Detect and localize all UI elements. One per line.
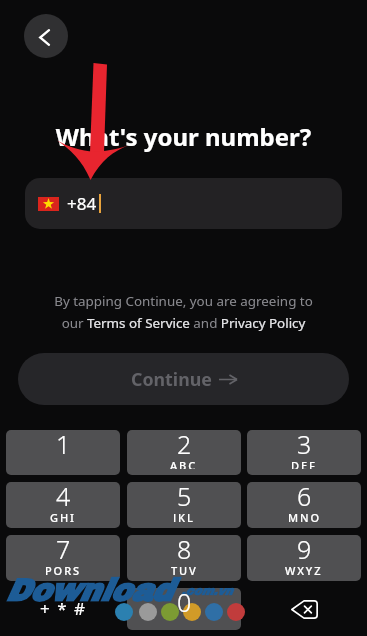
button[interactable] <box>127 588 241 630</box>
staticText: 4 <box>56 482 71 513</box>
button[interactable]: 5 <box>127 482 241 528</box>
staticText: By tapping Continue, you are agreeing to <box>0 292 367 310</box>
staticText: .com.vn <box>181 584 233 597</box>
button[interactable]: 9 <box>247 535 361 581</box>
button[interactable]: 4 <box>6 482 120 528</box>
button[interactable]: 6 <box>247 482 361 528</box>
staticText: 5 <box>177 482 192 513</box>
staticText: GHI <box>50 510 76 522</box>
staticText: What's your number? <box>0 120 367 153</box>
staticText: DEF <box>291 458 317 469</box>
staticText: Continue <box>131 367 212 391</box>
button[interactable]: + * # <box>6 588 120 630</box>
staticText: Download <box>5 574 172 608</box>
staticText: +84 <box>67 192 97 215</box>
staticText: MNO <box>288 510 321 522</box>
button[interactable]: 8 <box>127 535 241 581</box>
staticText: 0 <box>177 585 192 619</box>
button[interactable]: Backspace <box>247 588 361 630</box>
button[interactable]: 1 <box>6 430 120 475</box>
staticText: 7 <box>56 535 71 566</box>
staticText: our Terms of Service and Privacy Policy <box>0 314 367 332</box>
staticText: TUV <box>171 563 198 575</box>
staticText: WXYZ <box>285 563 323 575</box>
button[interactable]: 7 <box>6 535 120 581</box>
staticText: ABC <box>170 458 198 469</box>
staticText: 2 <box>177 430 192 461</box>
staticText: 8 <box>177 535 192 566</box>
button[interactable]: Back <box>24 14 68 58</box>
button[interactable]: Continue <box>18 353 349 405</box>
button[interactable]: +84 <box>25 178 342 229</box>
staticText: 9 <box>297 535 312 566</box>
button[interactable]: 2 <box>127 430 241 475</box>
staticText: PQRS <box>45 563 81 575</box>
button[interactable]: 3 <box>247 430 361 475</box>
staticText: 1 <box>56 430 71 461</box>
staticText: 3 <box>297 430 312 461</box>
staticText: JKL <box>173 510 195 522</box>
staticText: 6 <box>297 482 312 513</box>
staticText: + * # <box>40 597 87 620</box>
